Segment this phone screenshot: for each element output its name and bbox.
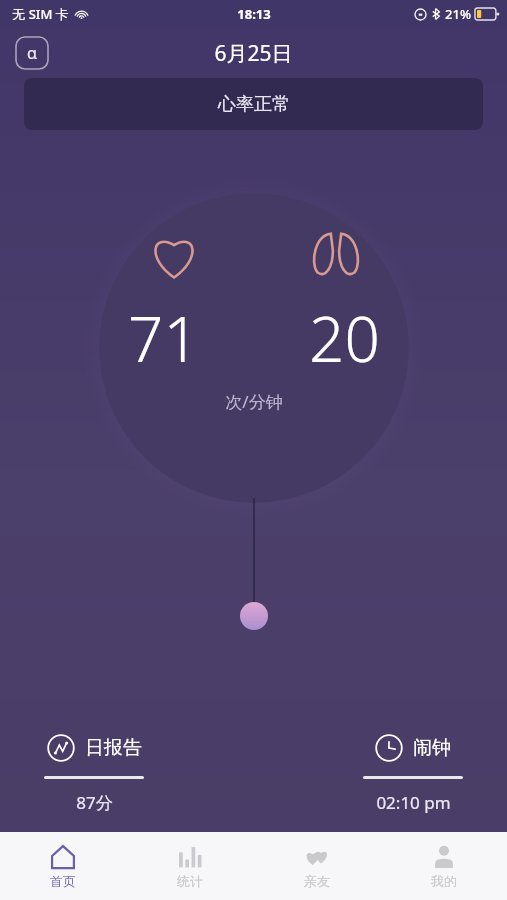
- staticText: 闹钟: [413, 736, 451, 760]
- staticText: 02:10 pm: [376, 791, 451, 814]
- button[interactable]: Alpha: [16, 37, 48, 69]
- button[interactable]: 心率正常: [24, 78, 483, 130]
- staticText: 20: [309, 296, 380, 380]
- staticText: 18:13: [237, 5, 271, 23]
- staticText: 我的: [431, 873, 457, 889]
- staticText: 心率正常: [218, 93, 290, 116]
- staticText: 21%: [445, 5, 471, 23]
- staticText: 统计: [177, 873, 203, 889]
- button[interactable]: 亲友: [253, 832, 380, 900]
- staticText: 6月25日: [214, 39, 293, 68]
- staticText: 87分: [76, 791, 113, 814]
- staticText: α: [27, 42, 37, 64]
- staticText: 亲友: [304, 873, 330, 889]
- staticText: 首页: [50, 873, 76, 889]
- button[interactable]: 统计: [126, 832, 253, 900]
- button[interactable]: 我的: [380, 832, 507, 900]
- staticText: 日报告: [85, 736, 142, 760]
- button[interactable]: 闹钟: [363, 734, 463, 814]
- staticText: 71: [128, 296, 199, 380]
- button[interactable]: 首页: [0, 832, 126, 900]
- staticText: 次/分钟: [225, 390, 283, 413]
- staticText: 无 SIM 卡: [12, 5, 69, 23]
- button[interactable]: 日报告: [44, 734, 144, 814]
